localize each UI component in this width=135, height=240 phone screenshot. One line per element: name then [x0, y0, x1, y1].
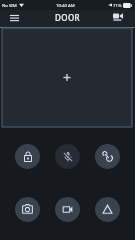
button[interactable]: Turn off video: [109, 8, 127, 25]
staticText: DOOR: [55, 12, 81, 23]
button[interactable]: Menu: [5, 9, 23, 26]
button[interactable]: Call: [95, 144, 120, 169]
button[interactable]: Take photo: [15, 197, 40, 222]
staticText: 71%: [113, 2, 122, 8]
button[interactable]: Lock: [15, 144, 40, 169]
button[interactable]: Record video: [55, 197, 80, 222]
button[interactable]: Microphone muted: [55, 144, 80, 169]
button[interactable]: Alarm: [95, 197, 120, 222]
staticText: No SIM: [2, 2, 17, 8]
staticText: 10:40 AM: [56, 2, 75, 8]
